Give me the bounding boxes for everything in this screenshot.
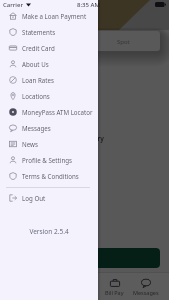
- button[interactable]: Locations: [0, 88, 98, 104]
- staticText: Profile & Settings: [22, 156, 73, 164]
- button[interactable]: Transfer: [68, 273, 99, 300]
- staticText: Version 2.5.4: [0, 227, 98, 236]
- staticText: Terms & Conditions: [22, 172, 79, 180]
- button[interactable]: About Us: [0, 56, 98, 72]
- staticText: Statements: [22, 28, 56, 36]
- button[interactable]: Loan Rates: [0, 72, 98, 88]
- button[interactable]: Log Out: [0, 190, 98, 206]
- button[interactable]: Statements: [0, 24, 98, 40]
- staticText: Messages: [22, 124, 51, 132]
- button[interactable]: Messages: [0, 120, 98, 136]
- staticText: Bill Pay: [105, 289, 124, 296]
- button[interactable]: Credit Card: [0, 40, 98, 56]
- staticText: Account Summary: [46, 134, 104, 143]
- staticText: MoneyPass ATM Locator: [22, 108, 93, 116]
- button[interactable]: Messages: [130, 273, 161, 300]
- staticText: Carrier: [3, 1, 23, 9]
- staticText: Spot: [117, 38, 130, 46]
- staticText: About Us: [22, 60, 49, 68]
- staticText: News: [22, 140, 38, 148]
- button[interactable]: Spot: [10, 31, 160, 51]
- button[interactable]: Terms & Conditions: [0, 168, 98, 184]
- staticText: Make a Loan Payment: [22, 12, 87, 20]
- staticText: 8:35 AM: [77, 1, 100, 9]
- staticText: Log Out: [22, 194, 46, 202]
- staticText: Messages: [133, 289, 159, 296]
- button[interactable]: Profile & Settings: [0, 152, 98, 168]
- staticText: Loan Rates: [22, 76, 54, 84]
- staticText: Locations: [22, 92, 50, 100]
- button[interactable]: News: [0, 136, 98, 152]
- staticText: Credit Card: [22, 44, 55, 52]
- button[interactable]: Bill Pay: [99, 273, 130, 300]
- button[interactable]: Manage: [9, 248, 160, 268]
- button[interactable]: Make a Loan Payment: [0, 8, 98, 24]
- button[interactable]: MoneyPass ATM Locator: [0, 104, 98, 120]
